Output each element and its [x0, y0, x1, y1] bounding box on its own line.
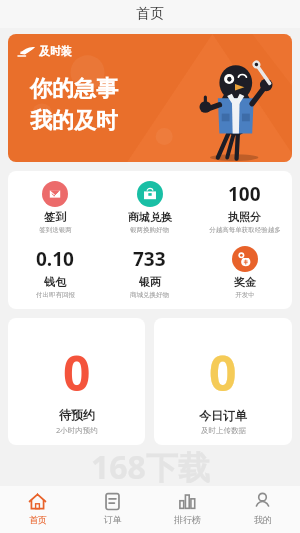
- staticText: 0: [63, 340, 91, 405]
- staticText: 开发中: [235, 291, 255, 299]
- staticText: 排行榜: [174, 514, 201, 525]
- button[interactable]: 签到: [8, 181, 102, 234]
- button[interactable]: 排行榜: [150, 486, 225, 533]
- button[interactable]: 商城兑换: [102, 181, 197, 234]
- staticText: 0.10: [36, 246, 74, 272]
- staticText: 168下载: [91, 445, 210, 486]
- staticText: 待预约: [59, 407, 95, 422]
- button[interactable]: 100: [197, 181, 292, 234]
- other: 奖金: [232, 246, 258, 272]
- staticText: 100: [228, 181, 261, 207]
- staticText: 订单: [104, 514, 122, 525]
- staticText: 及时装: [39, 44, 72, 58]
- staticText: 分越高每单获取经验越多: [209, 226, 281, 234]
- staticText: 及时上传数据: [201, 426, 246, 435]
- other: 商城兑换: [137, 181, 163, 207]
- staticText: 2小时内预约: [56, 425, 98, 435]
- staticText: 银两换购好物: [130, 226, 169, 234]
- staticText: 签到: [44, 210, 66, 224]
- staticText: 今日订单: [199, 408, 247, 423]
- staticText: 我的及时: [30, 107, 118, 135]
- staticText: 733: [133, 246, 166, 272]
- staticText: 商城兑换: [128, 210, 172, 224]
- button[interactable]: 及时装: [8, 34, 292, 162]
- staticText: 你的急事: [30, 75, 118, 103]
- staticText: 0: [209, 340, 237, 405]
- button[interactable]: 奖金: [197, 246, 292, 299]
- staticText: 奖金: [234, 275, 256, 289]
- staticText: 钱包: [44, 275, 66, 289]
- button[interactable]: 订单: [75, 486, 150, 533]
- staticText: 首页: [29, 514, 47, 525]
- staticText: 我的: [254, 514, 272, 525]
- button[interactable]: 0: [8, 318, 145, 445]
- button[interactable]: 0: [154, 318, 292, 445]
- staticText: 商城兑换好物: [130, 291, 169, 299]
- other: 签到: [42, 181, 68, 207]
- button[interactable]: 0.10: [8, 246, 102, 299]
- button[interactable]: 733: [102, 246, 197, 299]
- staticText: 签到送银两: [39, 226, 72, 234]
- button[interactable]: 我的: [225, 486, 300, 533]
- staticText: 执照分: [228, 210, 261, 224]
- staticText: 银两: [139, 275, 161, 289]
- staticText: 首页: [136, 5, 164, 23]
- staticText: 付出即有回报: [36, 291, 75, 299]
- button[interactable]: 首页: [0, 486, 75, 533]
